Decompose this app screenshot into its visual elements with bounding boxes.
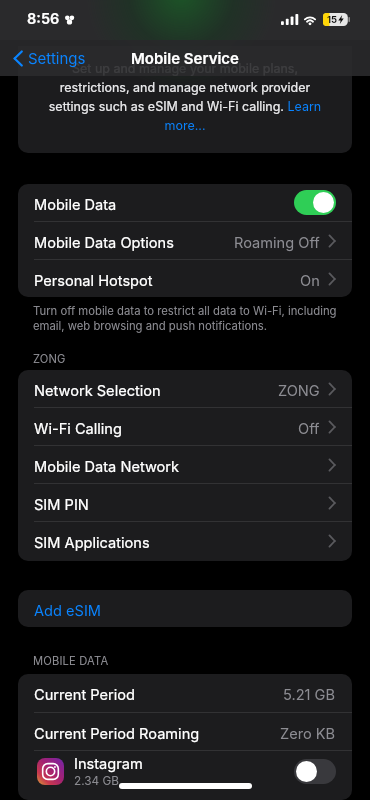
staticText: Set up and manage your mobile plans, res…: [46, 61, 324, 133]
staticText: Zero KB: [280, 725, 336, 743]
staticText: Mobile Data Options: [34, 234, 174, 252]
staticText: 8:56: [27, 10, 60, 28]
button[interactable]: Mobile Data Options: [18, 222, 352, 259]
staticText: Roaming Off: [234, 234, 320, 252]
staticText: Current Period Roaming: [34, 725, 200, 743]
staticText: Add eSIM: [34, 602, 102, 620]
staticText: 5.21 GB: [283, 686, 336, 704]
staticText: SIM PIN: [34, 496, 89, 514]
staticText: 2.34 GB: [74, 774, 120, 788]
button[interactable]: Current Period Roaming: [18, 713, 352, 750]
button[interactable]: SIM Applications: [18, 522, 352, 559]
button[interactable]: Personal Hotspot: [18, 260, 352, 297]
staticText: Mobile Service: [131, 49, 239, 67]
staticText: Personal Hotspot: [34, 272, 153, 290]
staticText: Turn off mobile data to restrict all dat…: [33, 304, 337, 333]
button[interactable]: Instagram: [18, 751, 352, 792]
button[interactable]: Instagram mobile data toggle: [294, 759, 336, 784]
button[interactable]: Current Period: [18, 674, 352, 712]
button[interactable]: Mobile Data toggle: [294, 190, 336, 215]
staticText: Settings: [28, 49, 86, 67]
button[interactable]: Settings: [10, 44, 89, 72]
staticText: On: [300, 272, 320, 290]
staticText: Wi-Fi Calling: [34, 420, 122, 438]
staticText: Mobile Data Network: [34, 458, 180, 476]
staticText: Mobile Data: [34, 196, 117, 214]
staticText: MOBILE DATA: [33, 654, 109, 668]
button[interactable]: Wi-Fi Calling: [18, 408, 352, 445]
button[interactable]: Mobile Data Network: [18, 446, 352, 483]
staticText: Current Period: [34, 686, 135, 704]
staticText: Off: [298, 420, 320, 438]
staticText: SIM Applications: [34, 534, 150, 552]
staticText: Instagram: [74, 755, 143, 773]
button[interactable]: Network Selection: [18, 370, 352, 407]
staticText: 15: [327, 14, 338, 25]
staticText: Network Selection: [34, 382, 161, 400]
button[interactable]: Mobile Data: [18, 184, 352, 221]
staticText: ZONG: [278, 382, 320, 400]
button[interactable]: SIM PIN: [18, 484, 352, 521]
staticText: ZONG: [33, 352, 66, 366]
button[interactable]: Add eSIM: [18, 590, 352, 627]
